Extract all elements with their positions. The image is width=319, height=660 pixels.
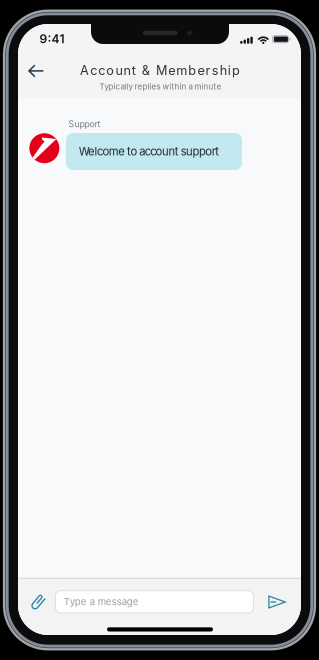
staticText: Support — [69, 119, 101, 129]
staticText: Welcome to account support — [79, 145, 219, 158]
button[interactable]: Attach file — [23, 587, 53, 617]
button[interactable]: Back — [18, 54, 54, 88]
staticText: Typically replies within a minute — [99, 82, 221, 91]
button[interactable]: Type a message — [55, 591, 253, 613]
button[interactable]: Send — [262, 587, 292, 617]
staticText: Type a message — [64, 596, 139, 608]
staticText: Account & Membership — [80, 63, 240, 78]
staticText: 9:41 — [40, 32, 65, 46]
